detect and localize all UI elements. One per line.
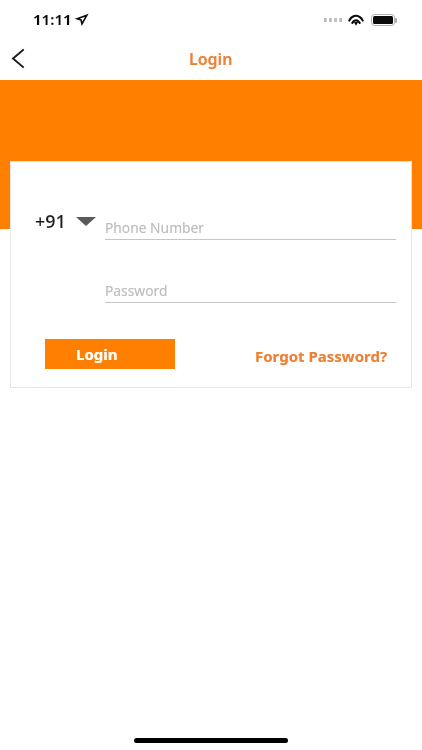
staticText: Login (76, 344, 118, 364)
staticText: +91 (35, 209, 66, 234)
staticText: Password (105, 281, 168, 300)
button[interactable]: Password (105, 274, 396, 303)
button[interactable]: +91 (35, 209, 96, 234)
button[interactable]: Back (0, 40, 36, 80)
button[interactable]: Phone Number (105, 211, 396, 240)
button[interactable]: Login (45, 339, 175, 369)
staticText: Login (189, 48, 233, 70)
staticText: 11:11 (33, 9, 72, 29)
button[interactable]: Forgot Password? (255, 346, 388, 366)
staticText: Phone Number (105, 218, 204, 237)
staticText: Forgot Password? (255, 346, 388, 366)
